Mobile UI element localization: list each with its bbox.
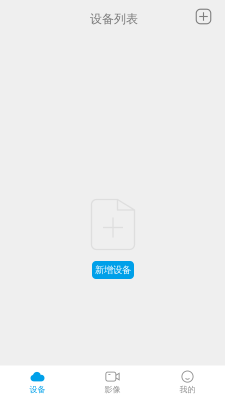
button[interactable]: 设备: [0, 365, 75, 400]
staticText: 影像: [104, 385, 120, 394]
button[interactable]: 我的: [150, 365, 225, 400]
staticText: 设备: [29, 385, 45, 394]
staticText: 新增设备: [95, 264, 131, 276]
button[interactable]: 影像: [75, 365, 150, 400]
staticText: 设备列表: [90, 12, 138, 26]
button[interactable]: 新增设备: [92, 261, 134, 279]
button[interactable]: Add device: [188, 2, 218, 30]
staticText: 我的: [179, 385, 195, 394]
